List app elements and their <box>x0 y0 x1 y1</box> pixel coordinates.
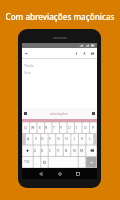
button[interactable]: P <box>89 122 97 133</box>
staticText: P <box>92 125 95 130</box>
button[interactable]: H <box>62 133 70 144</box>
button[interactable]: Add collaborator <box>80 48 88 58</box>
button[interactable]: K <box>78 133 86 144</box>
button[interactable]: E <box>36 122 43 133</box>
button[interactable]: T <box>50 122 57 133</box>
staticText: Com abreviações maçônicas <box>0 11 120 22</box>
staticText: Título <box>24 63 34 68</box>
staticText: V <box>57 148 60 153</box>
button[interactable]: O <box>81 122 89 133</box>
staticText: abreviações <box>50 112 68 116</box>
button[interactable]: Archive <box>88 48 96 58</box>
staticText: T <box>53 125 55 130</box>
staticText: Q <box>24 125 27 130</box>
staticText: H <box>65 136 68 141</box>
button[interactable]: Comma <box>32 156 40 168</box>
button[interactable]: Q <box>22 122 29 133</box>
staticText: B <box>65 148 68 153</box>
staticText: M <box>80 148 84 153</box>
staticText: Nota <box>24 71 32 75</box>
staticText: Z <box>34 148 37 153</box>
button[interactable]: B <box>62 144 70 156</box>
button[interactable]: C <box>46 144 54 156</box>
staticText: I <box>76 125 78 130</box>
button[interactable]: N <box>70 144 78 156</box>
staticText: X <box>41 148 44 153</box>
button[interactable]: Back <box>22 48 31 58</box>
staticText: , <box>36 160 37 165</box>
staticText: ?123 <box>24 160 30 164</box>
staticText: . <box>82 160 83 165</box>
staticText: R <box>45 125 48 130</box>
button[interactable]: G <box>54 133 62 144</box>
staticText: L <box>89 136 91 141</box>
staticText: U <box>68 125 71 130</box>
button[interactable]: X <box>39 144 46 156</box>
button[interactable]: R <box>43 122 50 133</box>
button[interactable]: L <box>86 133 94 144</box>
button[interactable]: V <box>54 144 62 156</box>
button[interactable]: Back <box>36 168 46 179</box>
button[interactable]: Home <box>55 168 65 179</box>
button[interactable]: M <box>78 144 86 156</box>
staticText: J <box>74 136 75 141</box>
staticText: S <box>35 136 37 141</box>
staticText: F <box>49 136 51 141</box>
button[interactable]: Symbols <box>22 156 32 168</box>
button[interactable]: Space <box>48 156 78 168</box>
staticText: N <box>73 148 76 153</box>
button[interactable]: I <box>73 122 81 133</box>
button[interactable]: J <box>70 133 78 144</box>
button[interactable]: W <box>29 122 36 133</box>
button[interactable]: Pin note <box>72 48 80 58</box>
button[interactable]: Recent apps <box>73 168 83 179</box>
button[interactable]: F <box>46 133 54 144</box>
button[interactable]: Y <box>57 122 65 133</box>
button[interactable]: Backspace <box>86 144 97 156</box>
button[interactable]: D <box>39 133 46 144</box>
button[interactable]: A <box>25 133 32 144</box>
button[interactable]: S <box>32 133 39 144</box>
staticText: A <box>27 136 30 141</box>
button[interactable]: Emoji <box>40 156 48 168</box>
staticText: O <box>84 125 87 130</box>
button[interactable]: Shift <box>22 144 32 156</box>
staticText: E <box>39 125 41 130</box>
staticText: G <box>57 136 60 141</box>
button[interactable]: U <box>65 122 73 133</box>
button[interactable]: Z <box>32 144 39 156</box>
staticText: Y <box>60 125 63 130</box>
staticText: W <box>31 125 35 130</box>
button[interactable]: Period <box>78 156 86 168</box>
staticText: D <box>41 136 44 141</box>
staticText: K <box>81 136 84 141</box>
staticText: C <box>49 148 52 153</box>
button[interactable]: Enter <box>86 156 97 168</box>
